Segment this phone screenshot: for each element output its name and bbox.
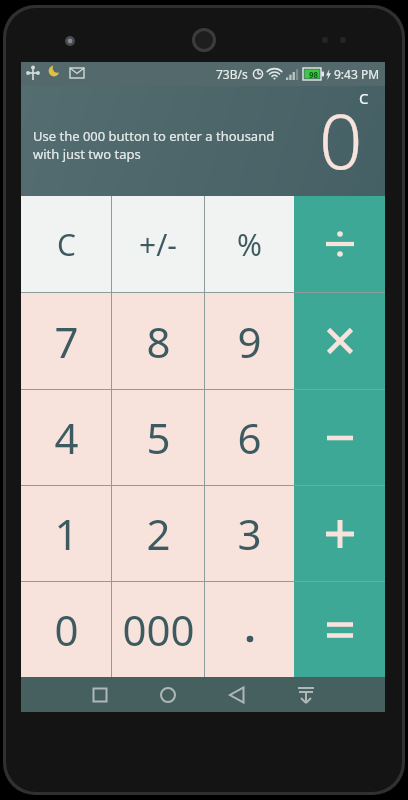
button[interactable]: 000 [112,582,204,677]
button[interactable]: 7 [21,293,111,389]
button[interactable]: 6 [205,390,294,485]
staticText: 000 [122,601,195,658]
button[interactable]: Home [151,678,185,712]
button[interactable]: Subtract [294,390,385,485]
staticText: 6 [237,409,262,466]
button[interactable]: Decimal point [205,582,294,677]
staticText: 0 [54,601,79,658]
staticText: % [237,224,262,265]
staticText: 98 [309,69,319,80]
button[interactable]: % [205,196,294,292]
staticText: Use the 000 button to enter a thousand w… [33,127,275,163]
staticText: 1 [54,505,79,562]
staticText: 4 [54,409,79,466]
button[interactable]: 9 [205,293,294,389]
staticText: 7 [54,313,79,370]
button[interactable]: 5 [112,390,204,485]
staticText: 5 [146,409,171,466]
staticText: 73B/s [216,66,248,82]
button[interactable]: Add [294,486,385,581]
staticText: 8 [146,313,171,370]
staticText: 3 [237,505,262,562]
staticText: 9:43 PM [334,66,380,82]
button[interactable]: Multiply [294,293,385,389]
button[interactable]: 3 [205,486,294,581]
button[interactable]: 1 [21,486,111,581]
button[interactable]: 0 [21,582,111,677]
staticText: C [359,88,369,108]
button[interactable]: Equals [294,582,385,677]
staticText: +/- [139,224,177,265]
button[interactable]: Recents [83,678,117,712]
button[interactable]: +/- [112,196,204,292]
staticText: 9 [237,313,262,370]
button[interactable]: 4 [21,390,111,485]
button[interactable]: Divide [294,196,385,292]
button[interactable]: Back [220,678,254,712]
button[interactable]: Hide navigation bar [289,678,323,712]
staticText: 0 [319,88,363,192]
button[interactable]: C [21,196,111,292]
staticText: C [57,224,76,265]
staticText: 2 [146,505,171,562]
button[interactable]: 2 [112,486,204,581]
button[interactable]: 8 [112,293,204,389]
